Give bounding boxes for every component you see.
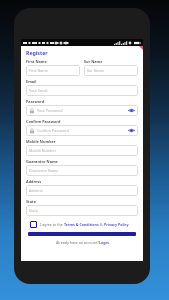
staticText: Email — [26, 79, 37, 84]
staticText: First Name — [26, 59, 47, 64]
other: Lock — [29, 108, 35, 114]
staticText: Password — [26, 99, 45, 104]
staticText: Register — [26, 49, 48, 56]
staticText: Confirm Password — [26, 119, 61, 124]
button[interactable]: Already have an account? — [26, 240, 138, 245]
button[interactable]: Guarantor Name — [26, 165, 138, 176]
other: Show password — [128, 108, 135, 113]
staticText: Privacy Policy — [104, 222, 129, 227]
staticText: First Name — [29, 68, 77, 73]
button[interactable]: Lock — [26, 105, 138, 116]
button[interactable]: Your Email — [26, 85, 138, 96]
staticText: Your Password — [37, 108, 128, 113]
staticText: Confirm Password — [37, 128, 128, 133]
staticText: Terms & Conditions — [64, 222, 99, 227]
staticText: Address — [29, 188, 135, 193]
button[interactable]: Mobile Number — [26, 145, 138, 156]
staticText: Sur Name — [87, 68, 135, 73]
staticText: Guarantor Name — [29, 168, 135, 173]
button[interactable]: Register — [28, 232, 136, 236]
staticText: Address — [26, 179, 42, 184]
staticText: Already have an account? — [56, 240, 99, 245]
other: Lock — [29, 128, 35, 134]
staticText: Login — [99, 240, 109, 245]
button[interactable]: Address — [26, 185, 138, 196]
staticText: I agree to the — [40, 222, 64, 227]
staticText: State — [29, 208, 135, 213]
other: Show password — [128, 128, 135, 133]
button[interactable]: Lock — [26, 125, 138, 136]
button[interactable]: First Name — [26, 65, 80, 76]
button[interactable]: Agree to terms checkbox — [30, 221, 134, 228]
button[interactable]: State — [26, 205, 138, 216]
staticText: Mobile Number — [29, 148, 135, 153]
staticText: State — [26, 199, 36, 204]
staticText: Your Email — [29, 88, 135, 93]
staticText: Sur Name — [84, 59, 103, 64]
other: Agree to terms checkbox — [30, 221, 37, 228]
staticText: & — [99, 222, 104, 227]
button[interactable]: Sur Name — [84, 65, 138, 76]
staticText: Mobile Number — [26, 139, 56, 144]
staticText: Guarantor Name — [26, 159, 58, 164]
